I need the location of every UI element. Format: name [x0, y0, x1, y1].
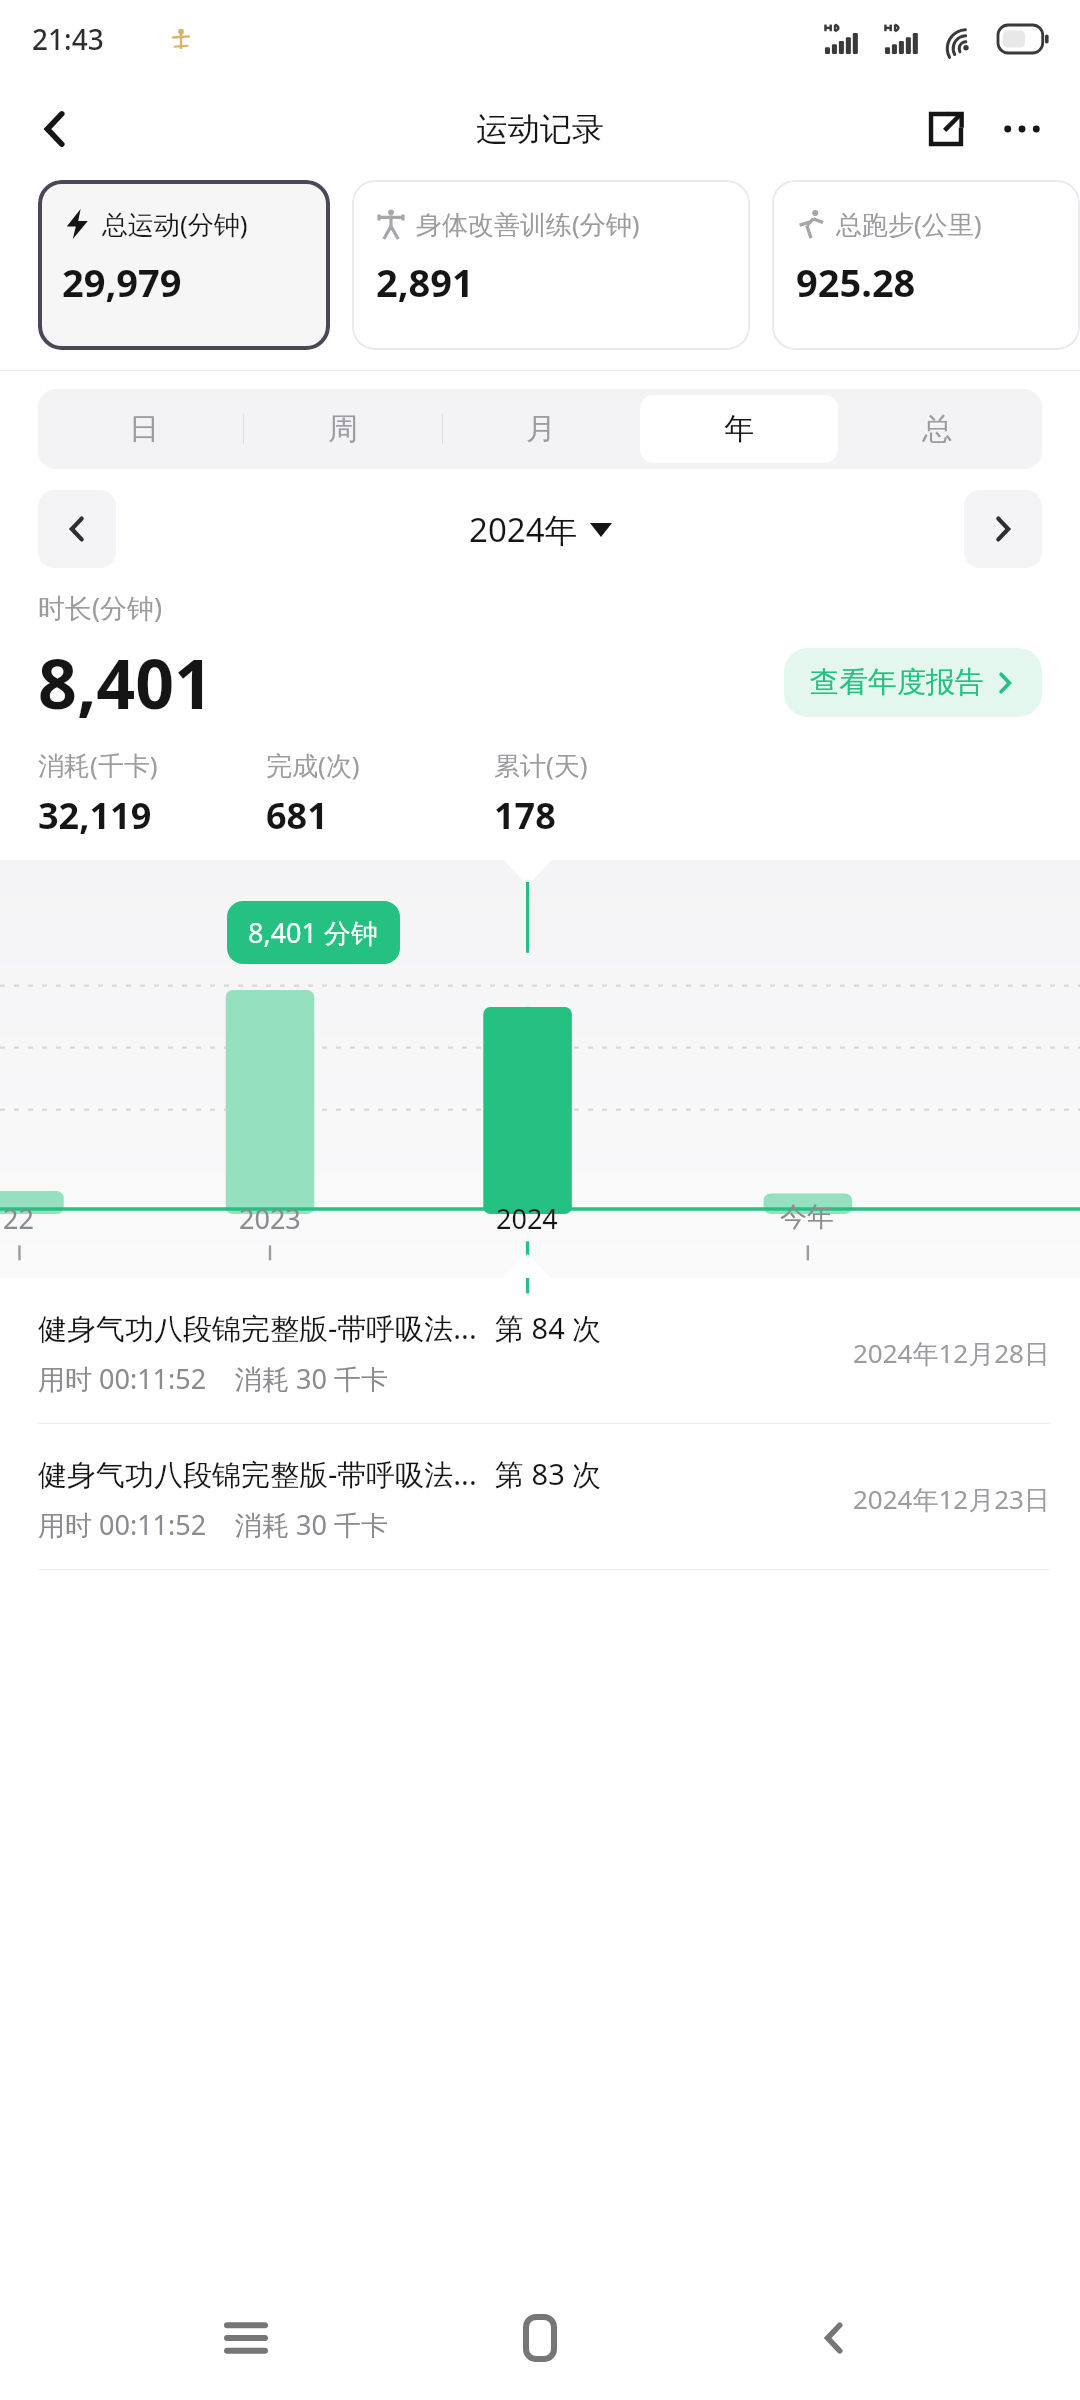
staticText: 健身气功八段锦完整版-带呼吸法...: [38, 1308, 477, 1348]
button[interactable]: 总: [838, 395, 1036, 463]
staticText: 周: [328, 410, 358, 448]
staticText: 总跑步(公里): [836, 206, 982, 242]
staticText: 29,979: [62, 256, 182, 308]
staticText: 2023: [239, 1200, 301, 1237]
staticText: 日: [129, 410, 159, 448]
staticText: 累计(天): [494, 747, 588, 783]
button[interactable]: 查看年度报告: [784, 648, 1042, 717]
staticText: 健身气功八段锦完整版-带呼吸法...: [38, 1454, 477, 1494]
staticText: 月: [526, 410, 556, 448]
staticText: 2,891: [376, 256, 474, 308]
staticText: 年: [724, 410, 754, 448]
button[interactable]: 身体改善训练(分钟): [352, 180, 750, 350]
staticText: 完成(次): [266, 747, 360, 783]
staticText: 8,401 分钟: [248, 914, 379, 951]
button[interactable]: Back: [18, 91, 94, 167]
button[interactable]: More options: [984, 91, 1060, 167]
button[interactable]: 总运动(分钟): [38, 180, 330, 350]
button[interactable]: Home: [492, 2290, 588, 2386]
staticText: 第 83 次: [495, 1454, 602, 1494]
button[interactable]: 健身气功八段锦完整版-带呼吸法...: [0, 1278, 1080, 1424]
staticText: 用时 00:11:52: [38, 1506, 207, 1543]
staticText: 第 84 次: [495, 1308, 602, 1348]
button[interactable]: 日: [44, 395, 243, 463]
staticText: 32,119: [38, 791, 152, 840]
staticText: 2024年12月28日: [853, 1335, 1050, 1371]
button[interactable]: 周: [243, 395, 442, 463]
staticText: 21:43: [32, 20, 104, 58]
staticText: 查看年度报告: [810, 664, 984, 701]
button[interactable]: 总跑步(公里): [772, 180, 1080, 350]
staticText: 消耗(千卡): [38, 747, 158, 783]
button[interactable]: Recent apps: [198, 2290, 294, 2386]
button[interactable]: 年: [640, 395, 838, 463]
staticText: 2024年12月23日: [853, 1481, 1050, 1517]
button[interactable]: Previous year: [38, 490, 116, 568]
staticText: 时长(分钟): [38, 589, 163, 626]
button[interactable]: 健身气功八段锦完整版-带呼吸法...: [0, 1424, 1080, 1570]
staticText: 2024: [496, 1200, 558, 1237]
staticText: 身体改善训练(分钟): [416, 206, 640, 242]
button[interactable]: 2024年: [469, 507, 612, 552]
staticText: 总运动(分钟): [102, 206, 248, 242]
staticText: 运动记录: [476, 109, 604, 149]
staticText: 681: [266, 791, 328, 840]
button[interactable]: Back: [786, 2290, 882, 2386]
staticText: 总: [922, 410, 952, 448]
staticText: 用时 00:11:52: [38, 1360, 207, 1397]
staticText: 22: [3, 1200, 34, 1237]
staticText: 消耗 30 千卡: [235, 1506, 388, 1543]
staticText: 925.28: [796, 256, 916, 308]
staticText: 8,401: [38, 636, 213, 729]
button[interactable]: 月: [442, 395, 640, 463]
staticText: 2024年: [469, 507, 578, 552]
staticText: 178: [494, 791, 556, 840]
button[interactable]: Share: [908, 91, 984, 167]
button[interactable]: Next year: [964, 490, 1042, 568]
staticText: 消耗 30 千卡: [235, 1360, 388, 1397]
staticText: 今年: [780, 1200, 834, 1234]
